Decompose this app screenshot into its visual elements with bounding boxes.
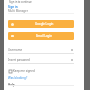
staticText: Username xyxy=(8,48,23,52)
staticText: Email Login xyxy=(36,34,53,38)
button[interactable]: Was blocking? xyxy=(8,76,28,80)
button[interactable]: Username xyxy=(8,48,74,52)
button[interactable]: Keep me signed xyxy=(9,69,35,73)
button[interactable]: Insert password xyxy=(8,58,74,62)
staticText: Sign in to continue xyxy=(9,0,32,4)
staticText: Google Login xyxy=(35,22,54,26)
button[interactable]: Sign in xyxy=(8,5,18,9)
staticText: Multi Manager xyxy=(8,9,28,13)
staticText: Keep me signed xyxy=(13,69,35,73)
button[interactable]: Google Login xyxy=(8,20,74,28)
staticText: Insert password xyxy=(8,58,30,62)
button[interactable]: Email Login xyxy=(8,32,74,40)
button[interactable]: Help xyxy=(8,83,15,87)
